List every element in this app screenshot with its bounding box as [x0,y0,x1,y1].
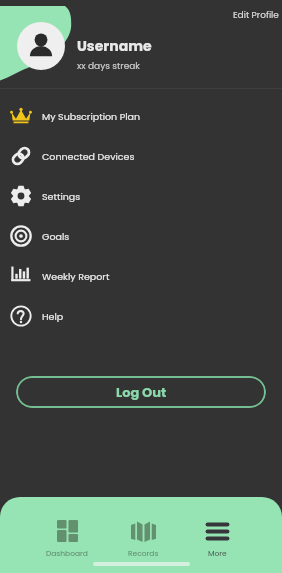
button[interactable]: Weekly Report [0,256,282,296]
staticText: xx days streak [77,60,140,73]
staticText: More [208,548,227,558]
button[interactable]: Connected Devices [0,136,282,176]
staticText: Username [77,36,152,56]
staticText: Goals [42,230,70,243]
button[interactable]: Log Out [16,376,266,408]
button[interactable]: Dashboard [43,497,91,558]
staticText: Records [128,548,159,558]
staticText: Settings [42,190,81,203]
button[interactable]: More [193,497,241,558]
staticText: Edit Profile [233,9,279,22]
staticText: Log Out [116,383,167,401]
button[interactable]: My Subscription Plan [0,96,282,136]
button[interactable]: Records [119,497,167,558]
staticText: My Subscription Plan [42,110,141,123]
button[interactable]: Settings [0,176,282,216]
staticText: Help [42,310,64,323]
button[interactable]: Goals [0,216,282,256]
button[interactable]: Help [0,296,282,336]
staticText: Dashboard [46,548,88,558]
staticText: Weekly Report [42,270,110,283]
staticText: Connected Devices [42,150,135,163]
button[interactable]: Edit Profile [227,5,282,26]
